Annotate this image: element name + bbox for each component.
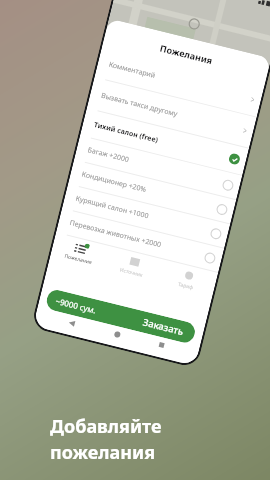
button[interactable]: Кондиционер +20% <box>68 160 236 224</box>
button[interactable]: Тихий салон (free) <box>80 109 249 176</box>
button[interactable]: Источник <box>104 250 163 283</box>
other: Back <box>68 320 75 327</box>
staticText: Кондиционер +20% <box>81 169 148 195</box>
button[interactable]: Багаж +2000 <box>74 136 242 200</box>
button[interactable]: Пожелания <box>50 237 108 269</box>
staticText: Багаж +2000 <box>87 145 131 165</box>
staticText: Добавляйте <box>50 414 162 439</box>
staticText: Тариф <box>177 281 195 291</box>
staticText: Тихий салон (free) <box>93 120 159 145</box>
other: Recents <box>159 342 165 348</box>
staticText: Вызвать такси другому <box>100 91 179 119</box>
staticText: Источник <box>119 266 144 279</box>
staticText: Перевозка животных +2000 <box>69 218 162 250</box>
button[interactable]: Тариф <box>158 263 217 296</box>
button[interactable]: ~9000 сум. <box>44 288 197 345</box>
staticText: Заказать <box>142 315 185 338</box>
button[interactable]: Перевозка животных +2000 <box>56 208 224 273</box>
button[interactable]: Курящий салон +1000 <box>62 184 230 249</box>
button[interactable]: Комментарий <box>94 46 264 118</box>
staticText: Курящий салон +1000 <box>75 194 150 221</box>
other: Home <box>114 331 121 338</box>
staticText: ~9000 сум. <box>54 295 98 316</box>
staticText: пожелания <box>50 440 156 465</box>
staticText: Пожелания <box>64 253 93 266</box>
button[interactable]: Вызвать такси другому <box>87 77 256 149</box>
staticText: Пожелания <box>104 28 269 80</box>
staticText: Комментарий <box>108 60 157 81</box>
